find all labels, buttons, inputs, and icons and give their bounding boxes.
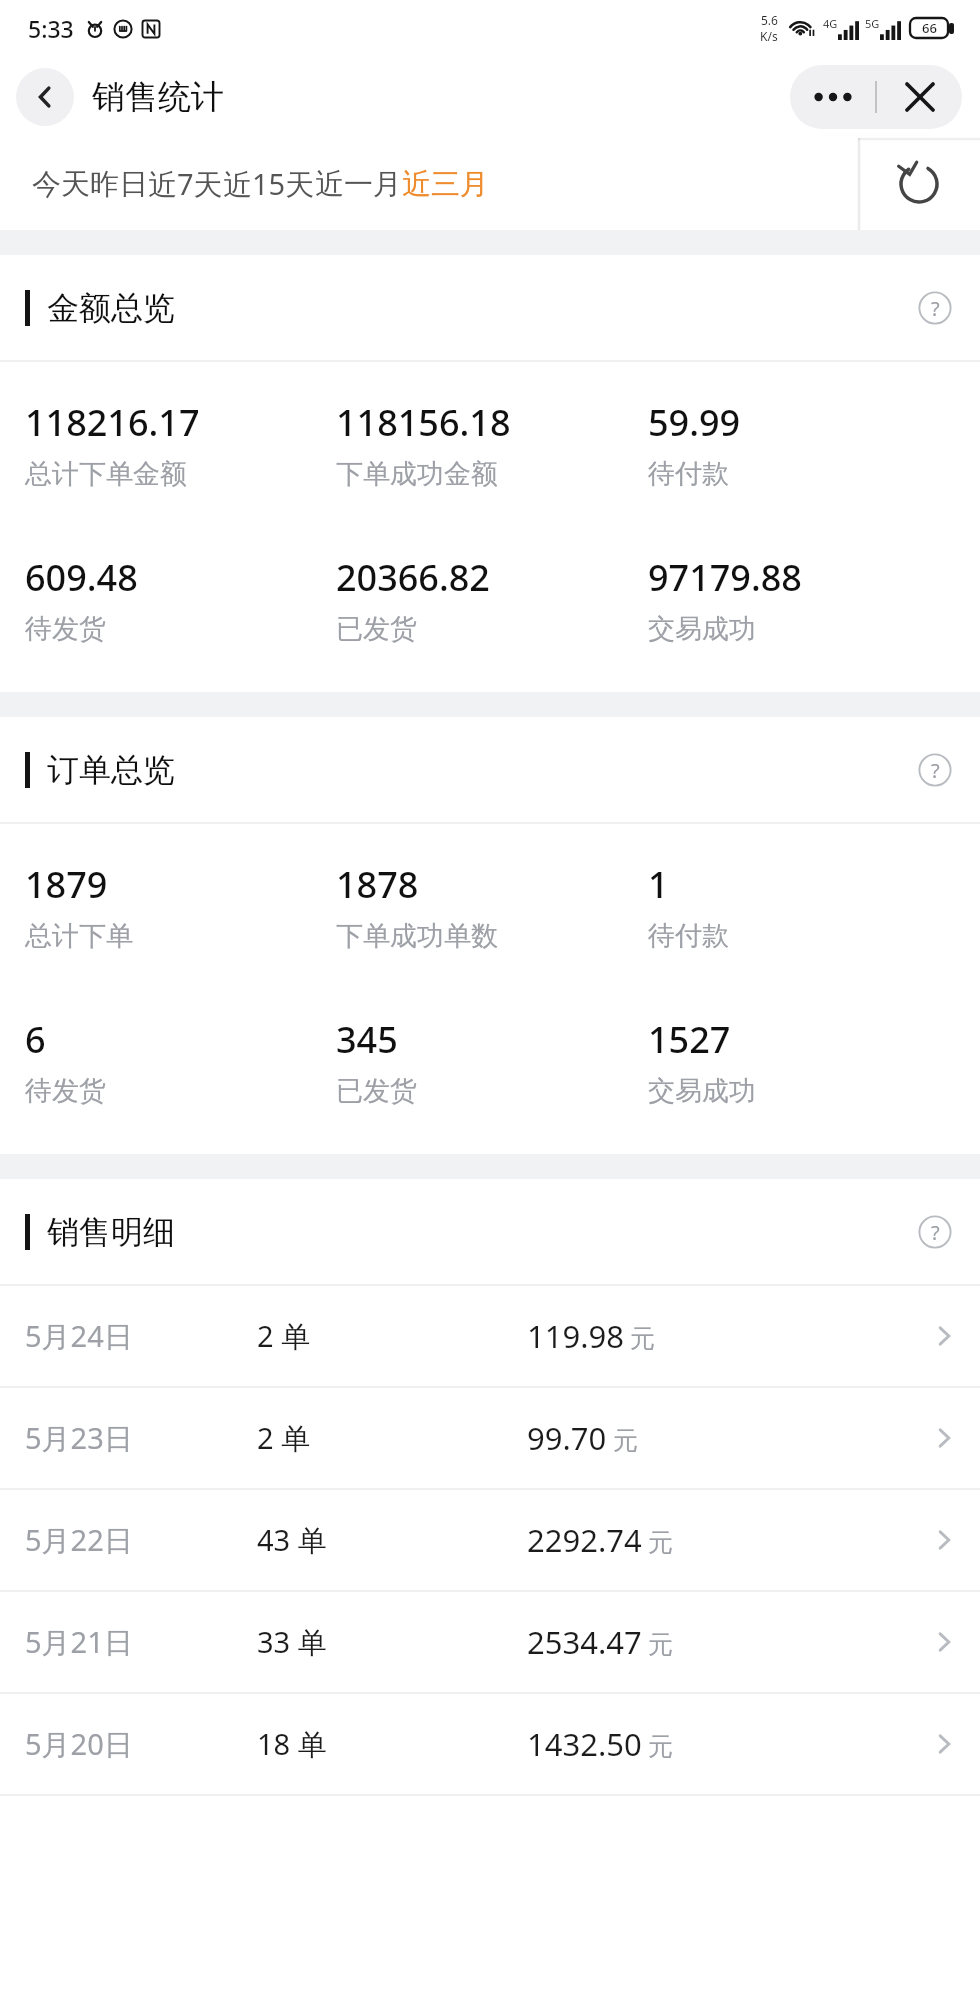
staticText: 元 <box>648 1629 673 1660</box>
staticText: 2534.47 <box>527 1621 642 1663</box>
staticText: 昨日 <box>90 166 148 203</box>
button[interactable]: 5月23日 <box>0 1388 980 1488</box>
button[interactable]: More options <box>790 65 875 129</box>
staticText: 4G <box>823 16 838 31</box>
staticText: 元 <box>648 1527 673 1558</box>
staticText: 待付款 <box>648 919 729 953</box>
staticText: 元 <box>630 1323 655 1354</box>
staticText: 43 单 <box>257 1520 527 1560</box>
staticText: 118156.18 <box>336 398 511 447</box>
staticText: 2292.74 <box>527 1519 642 1561</box>
staticText: K/s <box>760 28 778 44</box>
button[interactable]: 近15天 <box>223 138 315 230</box>
button[interactable]: 5月22日 <box>0 1490 980 1590</box>
staticText: 5.6 <box>761 12 778 28</box>
staticText: 近15天 <box>223 164 315 204</box>
button[interactable]: 5月21日 <box>0 1592 980 1692</box>
button[interactable]: 5月24日 <box>0 1286 980 1386</box>
staticText: 5月21日 <box>25 1622 257 1662</box>
staticText: 59.99 <box>648 398 741 447</box>
staticText: 5月22日 <box>25 1520 257 1560</box>
staticText: 销售明细 <box>47 1212 175 1252</box>
staticText: 1432.50 <box>527 1723 642 1765</box>
staticText: 元 <box>613 1425 638 1456</box>
staticText: 1878 <box>336 860 419 909</box>
staticText: 5G <box>865 16 880 31</box>
staticText: 1 <box>648 860 669 909</box>
staticText: 订单总览 <box>47 750 175 790</box>
button[interactable]: 5月20日 <box>0 1694 980 1794</box>
staticText: 销售统计 <box>92 76 224 118</box>
staticText: 总计下单 <box>25 919 133 953</box>
staticText: 近三月 <box>402 166 489 203</box>
staticText: 1879 <box>25 860 108 909</box>
staticText: 6 <box>25 1015 46 1064</box>
button[interactable]: 今天 <box>32 138 90 230</box>
button[interactable]: Help <box>914 287 956 329</box>
staticText: 1527 <box>648 1015 731 1064</box>
staticText: 已发货 <box>336 612 417 646</box>
staticText: 66 <box>922 19 937 37</box>
button[interactable]: 昨日 <box>90 138 148 230</box>
staticText: 近一月 <box>315 166 402 203</box>
staticText: 金额总览 <box>47 288 175 328</box>
staticText: 交易成功 <box>648 1074 756 1108</box>
staticText: 97179.88 <box>648 553 802 602</box>
staticText: ? <box>931 295 940 322</box>
staticText: 99.70 <box>527 1417 607 1459</box>
staticText: 近7天 <box>148 164 223 204</box>
button[interactable]: 近三月 <box>402 138 489 230</box>
staticText: 5月23日 <box>25 1418 257 1458</box>
staticText: 20366.82 <box>336 553 490 602</box>
staticText: 今天 <box>32 166 90 203</box>
staticText: 待发货 <box>25 1074 106 1108</box>
staticText: ? <box>931 1219 940 1246</box>
staticText: ? <box>931 757 940 784</box>
staticText: 2 单 <box>257 1316 527 1356</box>
staticText: 119.98 <box>527 1315 624 1357</box>
staticText: 5月24日 <box>25 1316 257 1356</box>
staticText: 33 单 <box>257 1622 527 1662</box>
staticText: 5月20日 <box>25 1724 257 1764</box>
staticText: 118216.17 <box>25 398 200 447</box>
button[interactable]: Close <box>877 65 962 129</box>
button[interactable]: Help <box>914 1211 956 1253</box>
button[interactable]: 近7天 <box>148 138 223 230</box>
staticText: 18 单 <box>257 1724 527 1764</box>
staticText: 609.48 <box>25 553 138 602</box>
button[interactable]: Help <box>914 749 956 791</box>
staticText: 下单成功单数 <box>336 919 498 953</box>
staticText: 已发货 <box>336 1074 417 1108</box>
staticText: 345 <box>336 1015 398 1064</box>
staticText: 5:33 <box>28 13 74 44</box>
staticText: 2 单 <box>257 1418 527 1458</box>
button[interactable]: 近一月 <box>315 138 402 230</box>
button[interactable]: Refresh <box>858 138 980 230</box>
staticText: 下单成功金额 <box>336 457 498 491</box>
staticText: 待发货 <box>25 612 106 646</box>
staticText: 交易成功 <box>648 612 756 646</box>
button[interactable]: Back <box>16 68 74 126</box>
staticText: 待付款 <box>648 457 729 491</box>
staticText: 元 <box>648 1731 673 1762</box>
staticText: 总计下单金额 <box>25 457 187 491</box>
